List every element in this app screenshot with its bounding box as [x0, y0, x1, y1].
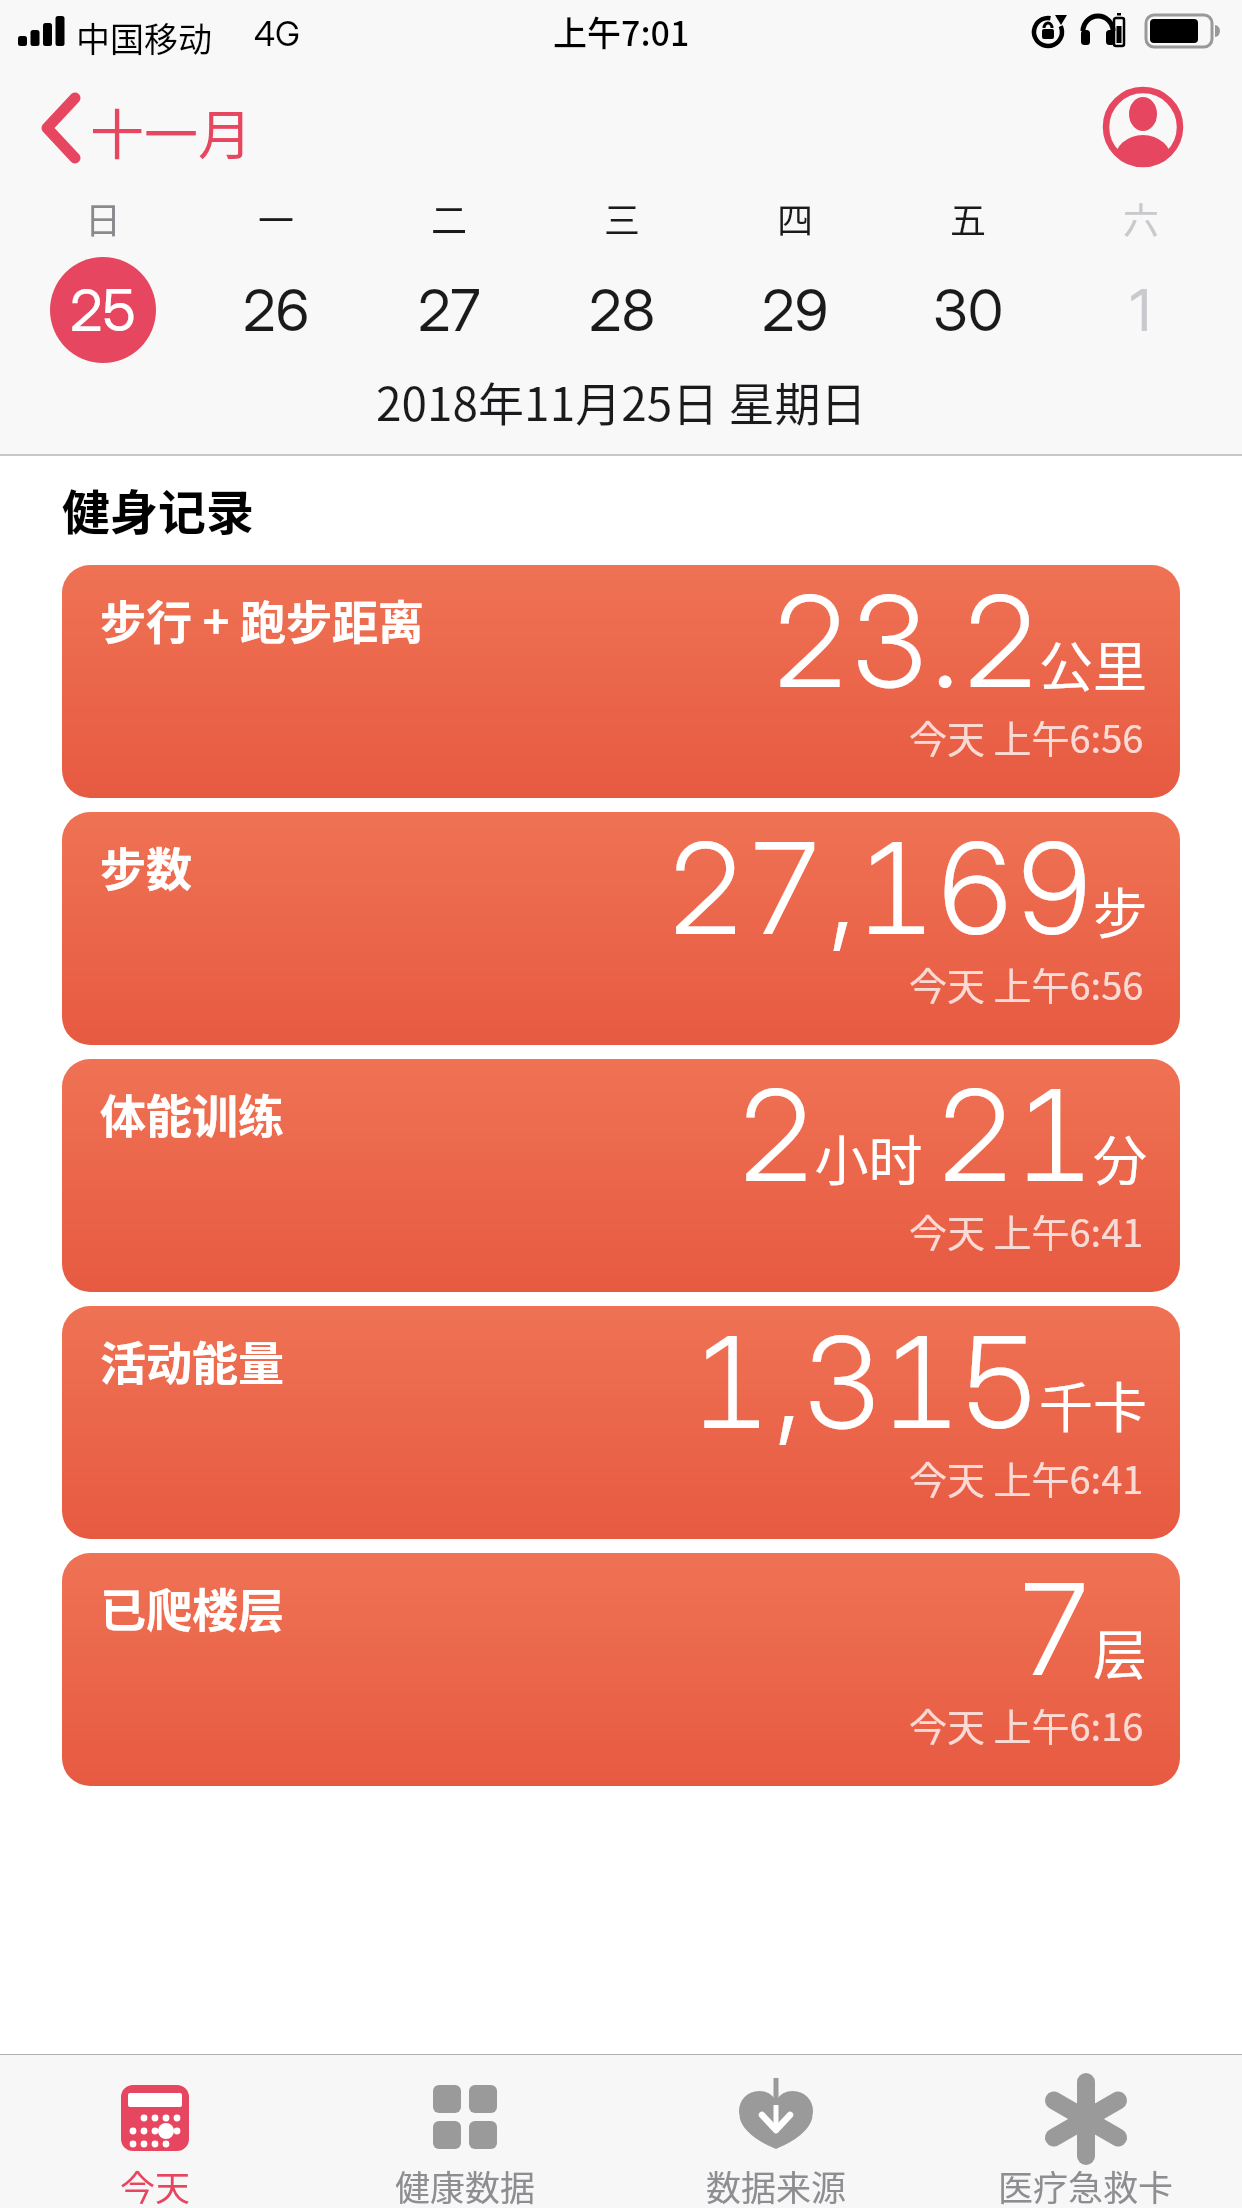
button[interactable]: 体能训练 [62, 1059, 1180, 1292]
button[interactable] [1103, 87, 1183, 167]
staticText: 2018年11月25日 星期日 [376, 368, 867, 428]
staticText: 健身记录 [62, 474, 255, 544]
staticText: 4G [254, 13, 300, 54]
staticText: 步行 + 跑步距离 [100, 586, 425, 653]
staticText: 医疗急救卡 [998, 2160, 1174, 2208]
staticText: 三 [604, 192, 641, 238]
staticText: 今天 上午6:56 [909, 709, 1144, 764]
button[interactable]: 28 [562, 272, 682, 348]
staticText: 27 [418, 275, 481, 345]
staticText: 今天 [120, 2160, 191, 2208]
staticText: 二 [431, 192, 468, 238]
button[interactable]: 医疗急救卡 [966, 2056, 1206, 2208]
button[interactable]: 1 [1081, 272, 1201, 348]
button[interactable]: 30 [908, 272, 1028, 348]
staticText: 活动能量 [100, 1327, 284, 1394]
staticText: 已爬楼层 [100, 1574, 284, 1641]
staticText: 今天 上午6:41 [909, 1203, 1144, 1258]
staticText: 23.2公里 [769, 565, 1147, 717]
staticText: 中国移动 [76, 13, 212, 62]
staticText: 一 [258, 192, 295, 238]
staticText: 五 [950, 192, 987, 238]
staticText: 今天 上午6:41 [909, 1450, 1144, 1505]
staticText: 1,315千卡 [690, 1306, 1147, 1458]
button[interactable]: 步行 + 跑步距离 [62, 565, 1180, 798]
staticText: 28 [589, 275, 656, 345]
staticText: 25 [70, 275, 136, 345]
staticText: 26 [243, 275, 310, 345]
staticText: 29 [762, 275, 829, 345]
button[interactable]: 健康数据 [345, 2056, 585, 2208]
staticText: 六 [1123, 192, 1160, 238]
staticText: 今天 上午6:56 [909, 956, 1144, 1011]
staticText: 健康数据 [395, 2160, 536, 2208]
staticText: 步数 [100, 833, 192, 900]
staticText: 日 [85, 192, 122, 238]
staticText: 7层 [1013, 1553, 1147, 1705]
button[interactable]: 活动能量 [62, 1306, 1180, 1539]
button[interactable]: 数据来源 [656, 2056, 896, 2208]
staticText: 数据来源 [706, 2160, 847, 2208]
button[interactable]: 已爬楼层 [62, 1553, 1180, 1786]
staticText: 四 [777, 192, 814, 238]
staticText: 今天 上午6:16 [909, 1697, 1144, 1752]
button[interactable]: 十一月 [90, 92, 310, 164]
button[interactable]: 29 [735, 272, 855, 348]
button[interactable]: 步数 [62, 812, 1180, 1045]
staticText: 1 [1130, 275, 1152, 345]
button[interactable]: 25 [43, 272, 163, 348]
staticText: 27,169步 [665, 812, 1147, 964]
button[interactable]: 26 [216, 272, 336, 348]
button[interactable]: 27 [389, 272, 509, 348]
button[interactable]: 今天 [35, 2056, 275, 2208]
staticText: 30 [933, 275, 1004, 345]
staticText: 2小时 21分 [735, 1059, 1147, 1211]
staticText: 上午7:01 [553, 7, 690, 56]
staticText: 十一月 [90, 92, 252, 164]
staticText: 体能训练 [100, 1080, 284, 1147]
